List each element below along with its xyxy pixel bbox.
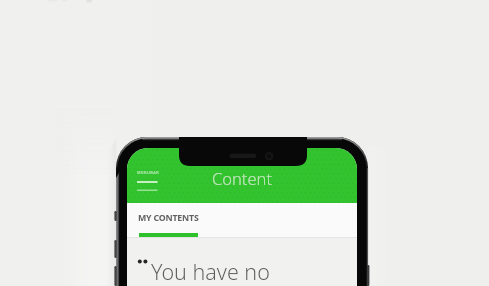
staticText: MENUBAR <box>137 170 160 175</box>
button[interactable]: MY CONTENTS <box>127 203 198 236</box>
staticText: You have no <box>151 257 270 286</box>
staticText: MY CONTENTS <box>138 212 199 224</box>
staticText: Content <box>127 167 357 189</box>
button[interactable]: Open navigation menu <box>132 167 164 196</box>
